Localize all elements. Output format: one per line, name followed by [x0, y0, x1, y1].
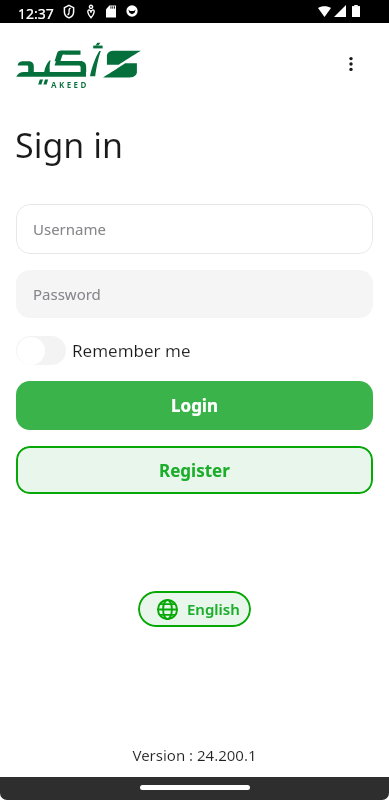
button[interactable]: More options [328, 41, 374, 87]
staticText: Password [33, 284, 101, 304]
button[interactable]: Login [16, 381, 373, 430]
staticText: English [187, 599, 240, 619]
staticText: Username [33, 219, 106, 239]
button[interactable]: Password [16, 270, 373, 318]
button[interactable]: English [138, 591, 251, 627]
staticText: Login [171, 394, 219, 417]
staticText: Remember me [72, 339, 191, 362]
staticText: AKEED [51, 79, 89, 90]
staticText: 12:37 [18, 4, 54, 23]
button[interactable]: Remember me [16, 334, 191, 366]
staticText: Sign in [15, 122, 123, 168]
staticText: Register [159, 459, 230, 482]
button[interactable]: Register [16, 446, 373, 494]
staticText: Version : 24.200.1 [132, 745, 257, 765]
button[interactable]: Username [16, 204, 373, 254]
